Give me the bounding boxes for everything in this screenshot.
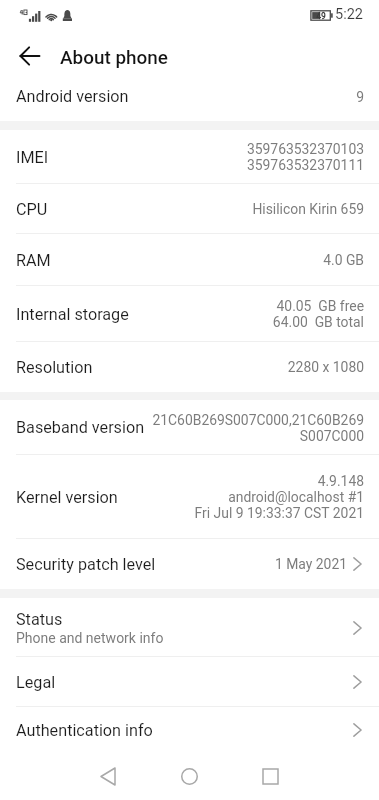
staticText: 2280 x 1080: [287, 359, 364, 375]
button[interactable]: Internal storage: [0, 286, 379, 342]
staticText: 5:22: [335, 6, 363, 23]
button[interactable]: IMEI: [0, 130, 379, 184]
button[interactable]: Kernel version: [0, 455, 379, 539]
staticText: 21C60B269S007C000,21C60B269 S007C000: [152, 412, 364, 444]
staticText: Kernel version: [16, 488, 118, 507]
button[interactable]: Back: [6, 32, 54, 80]
button[interactable]: Recents: [240, 753, 300, 800]
button[interactable]: Resolution: [0, 342, 379, 392]
staticText: IMEI: [16, 148, 49, 167]
button[interactable]: Authentication info: [0, 707, 379, 753]
staticText: 40.05 GB free 64.00 GB total: [272, 298, 364, 330]
button[interactable]: CPU: [0, 184, 379, 234]
staticText: Authentication info: [16, 721, 153, 740]
staticText: RAM: [16, 251, 51, 270]
staticText: 4.0 GB: [323, 252, 364, 268]
staticText: Android version: [16, 87, 129, 106]
button[interactable]: Legal: [0, 657, 379, 707]
button[interactable]: Status: [0, 598, 379, 657]
button[interactable]: Home: [159, 753, 219, 800]
staticText: CPU: [16, 200, 48, 219]
staticText: About phone: [60, 46, 168, 68]
staticText: Phone and network info: [16, 630, 164, 646]
button[interactable]: RAM: [0, 234, 379, 286]
staticText: Resolution: [16, 358, 93, 377]
button[interactable]: Security patch level: [0, 539, 379, 589]
staticText: 49: [316, 11, 326, 21]
staticText: Status: [16, 610, 63, 629]
staticText: 359763532370103 359763532370111: [246, 141, 364, 173]
staticText: 4.9.148 android@localhost #1 Fri Jul 9 1…: [194, 473, 364, 521]
staticText: 1 May 2021: [274, 556, 347, 572]
button[interactable]: Android version: [0, 76, 379, 121]
staticText: Legal: [16, 673, 56, 692]
staticText: Baseband version: [16, 418, 145, 437]
staticText: Security patch level: [16, 555, 156, 574]
button[interactable]: Back: [78, 753, 138, 800]
staticText: Internal storage: [16, 305, 129, 324]
staticText: Hisilicon Kirin 659: [252, 201, 364, 217]
staticText: 9: [356, 89, 364, 105]
button[interactable]: Baseband version: [0, 400, 379, 455]
